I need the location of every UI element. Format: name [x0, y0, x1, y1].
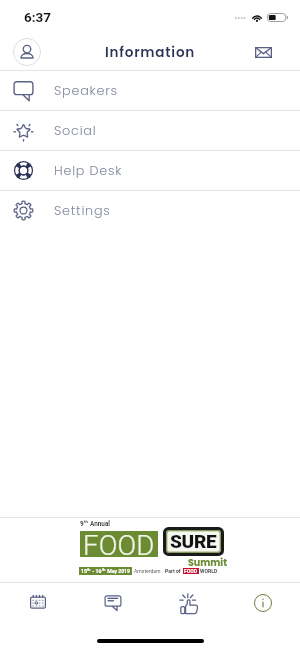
staticText: 6:37 [24, 9, 52, 25]
staticText: Summit [188, 556, 228, 569]
button[interactable]: Social [0, 111, 300, 150]
staticText: Part of [165, 568, 181, 574]
button[interactable]: Information [225, 583, 300, 625]
staticText: th [84, 519, 88, 524]
button[interactable]: Settings [0, 191, 300, 230]
staticText: Help Desk [54, 162, 123, 180]
staticText: Information [105, 43, 196, 62]
staticText: th [102, 567, 106, 571]
staticText: - 16 [91, 568, 102, 574]
staticText: SURE [170, 530, 217, 552]
staticText: th [87, 567, 91, 571]
button[interactable]: Profile [13, 38, 41, 66]
button[interactable]: Speakers [0, 71, 300, 110]
staticText: Speakers [54, 82, 118, 100]
staticText: FOOD [83, 529, 155, 555]
staticText: Settings [54, 202, 111, 220]
staticText: Social [54, 122, 97, 140]
staticText: WORLD [200, 568, 218, 574]
button[interactable]: Messages [250, 39, 276, 65]
button[interactable]: Help Desk [0, 151, 300, 190]
staticText: 15 [81, 568, 87, 574]
staticText: 9 [80, 520, 84, 528]
button[interactable]: Chat [75, 583, 150, 625]
staticText: FOOD [184, 568, 198, 574]
staticText: Annual [90, 520, 111, 528]
staticText: May 2019 [106, 568, 130, 574]
button[interactable]: Agenda [0, 583, 75, 625]
button[interactable]: Feedback [150, 583, 225, 625]
staticText: Amsterdam [134, 568, 161, 574]
